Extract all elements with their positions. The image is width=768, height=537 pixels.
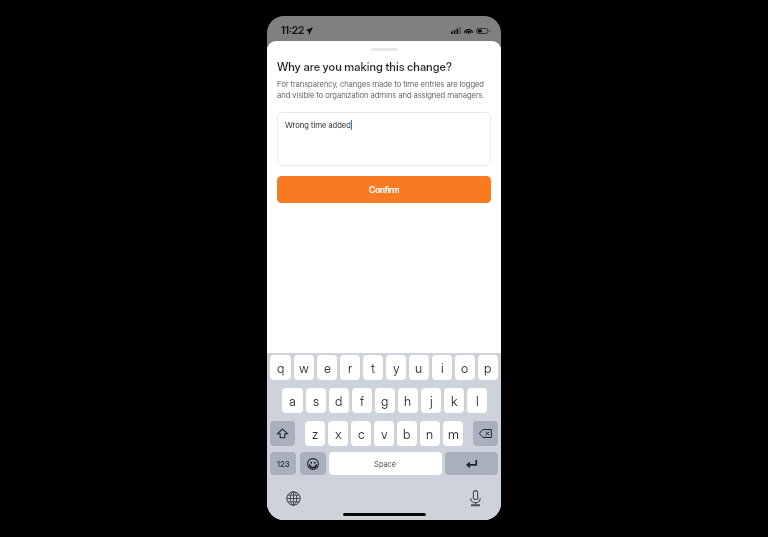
staticText: 11:22 [281, 24, 305, 37]
button[interactable]: o [455, 355, 475, 380]
button[interactable]: f [352, 388, 372, 413]
button[interactable]: i [432, 355, 452, 380]
button[interactable]: r [340, 355, 360, 380]
button[interactable]: m [443, 421, 463, 446]
staticText: Why are you making this change? [277, 60, 453, 74]
staticText: h [404, 393, 412, 409]
staticText: n [426, 426, 434, 442]
button[interactable]: s [306, 388, 326, 413]
staticText: r [348, 360, 353, 376]
button[interactable]: Numbers [270, 452, 296, 475]
button[interactable]: y [386, 355, 406, 380]
button[interactable]: Emoji [300, 452, 326, 475]
button[interactable]: p [478, 355, 498, 380]
staticText: For transparency, changes made to time e… [277, 79, 492, 100]
button[interactable]: g [375, 388, 395, 413]
button[interactable]: w [294, 355, 314, 380]
button[interactable]: Backspace [473, 421, 498, 446]
staticText: p [484, 360, 492, 376]
button[interactable]: k [444, 388, 464, 413]
staticText: x [335, 426, 342, 442]
staticText: m [448, 426, 459, 442]
button[interactable]: v [374, 421, 394, 446]
staticText: Space [374, 459, 397, 469]
staticText: a [289, 393, 296, 409]
staticText: d [335, 393, 343, 409]
button[interactable]: Voice input [470, 490, 481, 506]
button[interactable]: b [397, 421, 417, 446]
button[interactable]: u [409, 355, 429, 380]
button[interactable]: Wrong time added [277, 112, 491, 166]
button[interactable]: l [467, 388, 487, 413]
staticText: u [415, 360, 423, 376]
button[interactable]: n [420, 421, 440, 446]
button[interactable]: x [328, 421, 348, 446]
button[interactable]: t [363, 355, 383, 380]
staticText: o [461, 360, 469, 376]
staticText: b [403, 426, 411, 442]
staticText: q [277, 360, 285, 376]
staticText: s [313, 393, 320, 409]
staticText: w [299, 360, 309, 376]
button[interactable]: j [421, 388, 441, 413]
staticText: c [358, 426, 365, 442]
button[interactable]: Shift [270, 421, 295, 446]
button[interactable]: h [398, 388, 418, 413]
staticText: l [476, 393, 479, 409]
button[interactable]: c [351, 421, 371, 446]
button[interactable]: e [317, 355, 337, 380]
staticText: k [451, 393, 458, 409]
button[interactable]: Space [329, 452, 442, 475]
staticText: e [324, 360, 331, 376]
staticText: t [371, 360, 376, 376]
staticText: v [381, 426, 388, 442]
staticText: Wrong time added [285, 120, 351, 130]
staticText: i [441, 360, 444, 376]
button[interactable]: a [282, 388, 303, 413]
staticText: y [393, 360, 400, 376]
button[interactable]: Confirm [277, 176, 491, 203]
button[interactable]: q [270, 355, 291, 380]
staticText: f [360, 393, 364, 409]
staticText: z [312, 426, 319, 442]
button[interactable]: d [329, 388, 349, 413]
button[interactable]: Enter [445, 452, 498, 475]
staticText: j [430, 393, 433, 409]
button[interactable]: z [305, 421, 325, 446]
button[interactable]: Change keyboard language [286, 491, 301, 506]
staticText: 123 [277, 459, 290, 469]
staticText: g [381, 393, 389, 409]
staticText: Confirm [369, 185, 400, 195]
